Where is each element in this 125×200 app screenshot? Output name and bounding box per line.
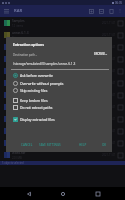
button[interactable]: Skip existing files [6, 86, 112, 94]
staticText: 2021-11-01 [102, 93, 116, 97]
staticText: 06:05 [115, 1, 123, 5]
staticText: Display extracted files [20, 117, 55, 122]
staticText: Extraction options [13, 42, 45, 47]
staticText: Overwrite without prompts [20, 81, 64, 86]
staticText: 2021-11-01 [102, 141, 116, 145]
staticText: BROWSE... [94, 52, 108, 56]
staticText: 2021-11-01 [102, 69, 116, 73]
button[interactable]: Back [22, 187, 35, 200]
staticText: 2021-11-01 [102, 45, 116, 49]
button[interactable]: Do not extract paths [6, 103, 112, 111]
button[interactable]: backup.zip [0, 77, 125, 89]
staticText: RAR [14, 8, 23, 14]
button[interactable]: Delete [106, 6, 116, 16]
button[interactable]: video.rar [0, 149, 125, 161]
button[interactable]: Samples [0, 17, 125, 29]
button[interactable]: Home [56, 187, 69, 200]
staticText: 5.6 MB [12, 84, 22, 88]
button[interactable]: music.rar [0, 101, 125, 113]
staticText: 64 MB [12, 108, 21, 112]
staticText: 4 KB [12, 60, 18, 64]
button[interactable]: SAVE SETTINGS [37, 141, 63, 149]
staticText: CANCEL [21, 143, 33, 147]
staticText: Ask before overwrite [20, 73, 53, 78]
staticText: readme.txt [12, 43, 29, 47]
button[interactable]: HELP [77, 141, 89, 149]
staticText: 2021-11-01 [102, 21, 116, 25]
staticText: 220 MB [12, 156, 22, 160]
button[interactable]: Extract [96, 6, 106, 16]
button[interactable]: Display extracted files [6, 115, 112, 123]
button[interactable]: docs.rar [0, 113, 125, 125]
staticText: 3 MB [12, 120, 19, 124]
button[interactable]: BROWSE... [91, 50, 111, 58]
staticText: 2021-11-01 [102, 129, 116, 133]
button[interactable]: unrar-6.1.3 [0, 29, 125, 41]
button[interactable]: Add files [86, 6, 96, 16]
staticText: license.txt [12, 55, 28, 59]
staticText: /storage/emulated/0/samples/unrar-6.1.3 [13, 62, 109, 66]
button[interactable]: archive.rar [0, 65, 125, 77]
staticText: 5 objects selected [2, 161, 24, 165]
button[interactable]: Ask before overwrite [6, 71, 112, 79]
button[interactable]: readme.txt [0, 41, 125, 53]
button[interactable]: Keep broken files [6, 96, 112, 104]
staticText: Destination path... [13, 53, 38, 57]
button[interactable]: OK [100, 141, 109, 149]
staticText: HELP [79, 143, 87, 147]
staticText: Do not extract paths [20, 105, 53, 110]
staticText: backup.zip [12, 79, 29, 83]
staticText: 24 MB [12, 96, 21, 100]
staticText: 2021-11-01 [102, 117, 116, 121]
staticText: unrar-6.1.3 [12, 31, 29, 35]
staticText: OK [102, 143, 107, 147]
staticText: video.rar [12, 151, 26, 155]
staticText: SAVE SETTINGS [39, 143, 61, 147]
staticText: 2021-11-01 [102, 81, 116, 85]
staticText: Keep broken files [20, 98, 48, 103]
staticText: 2021-11-01 [102, 57, 116, 61]
button[interactable]: photos.rar [0, 89, 125, 101]
staticText: 2021-11-01 [102, 105, 116, 109]
staticText: 2021-11-01 [102, 153, 116, 157]
button[interactable]: CANCEL [19, 141, 35, 149]
button[interactable]: Overwrite without prompts [6, 79, 112, 87]
staticText: 8 items [12, 36, 22, 40]
staticText: 2021-11-01 [102, 33, 116, 37]
button[interactable]: Recents [91, 187, 104, 200]
staticText: Skip existing files [20, 88, 48, 93]
staticText: 1.2 MB [12, 72, 22, 76]
button[interactable]: notes.rar [0, 137, 125, 149]
staticText: 12 items [12, 24, 24, 28]
button[interactable]: Menu [0, 5, 12, 17]
button[interactable]: Extraction options [6, 37, 112, 152]
staticText: docs.rar [12, 115, 25, 119]
staticText: music.rar [12, 103, 27, 107]
staticText: archive.rar [12, 67, 28, 71]
staticText: Samples [12, 19, 25, 23]
button[interactable]: license.txt [0, 53, 125, 65]
staticText: photos.rar [12, 91, 28, 95]
button[interactable]: setup.exe [0, 125, 125, 137]
